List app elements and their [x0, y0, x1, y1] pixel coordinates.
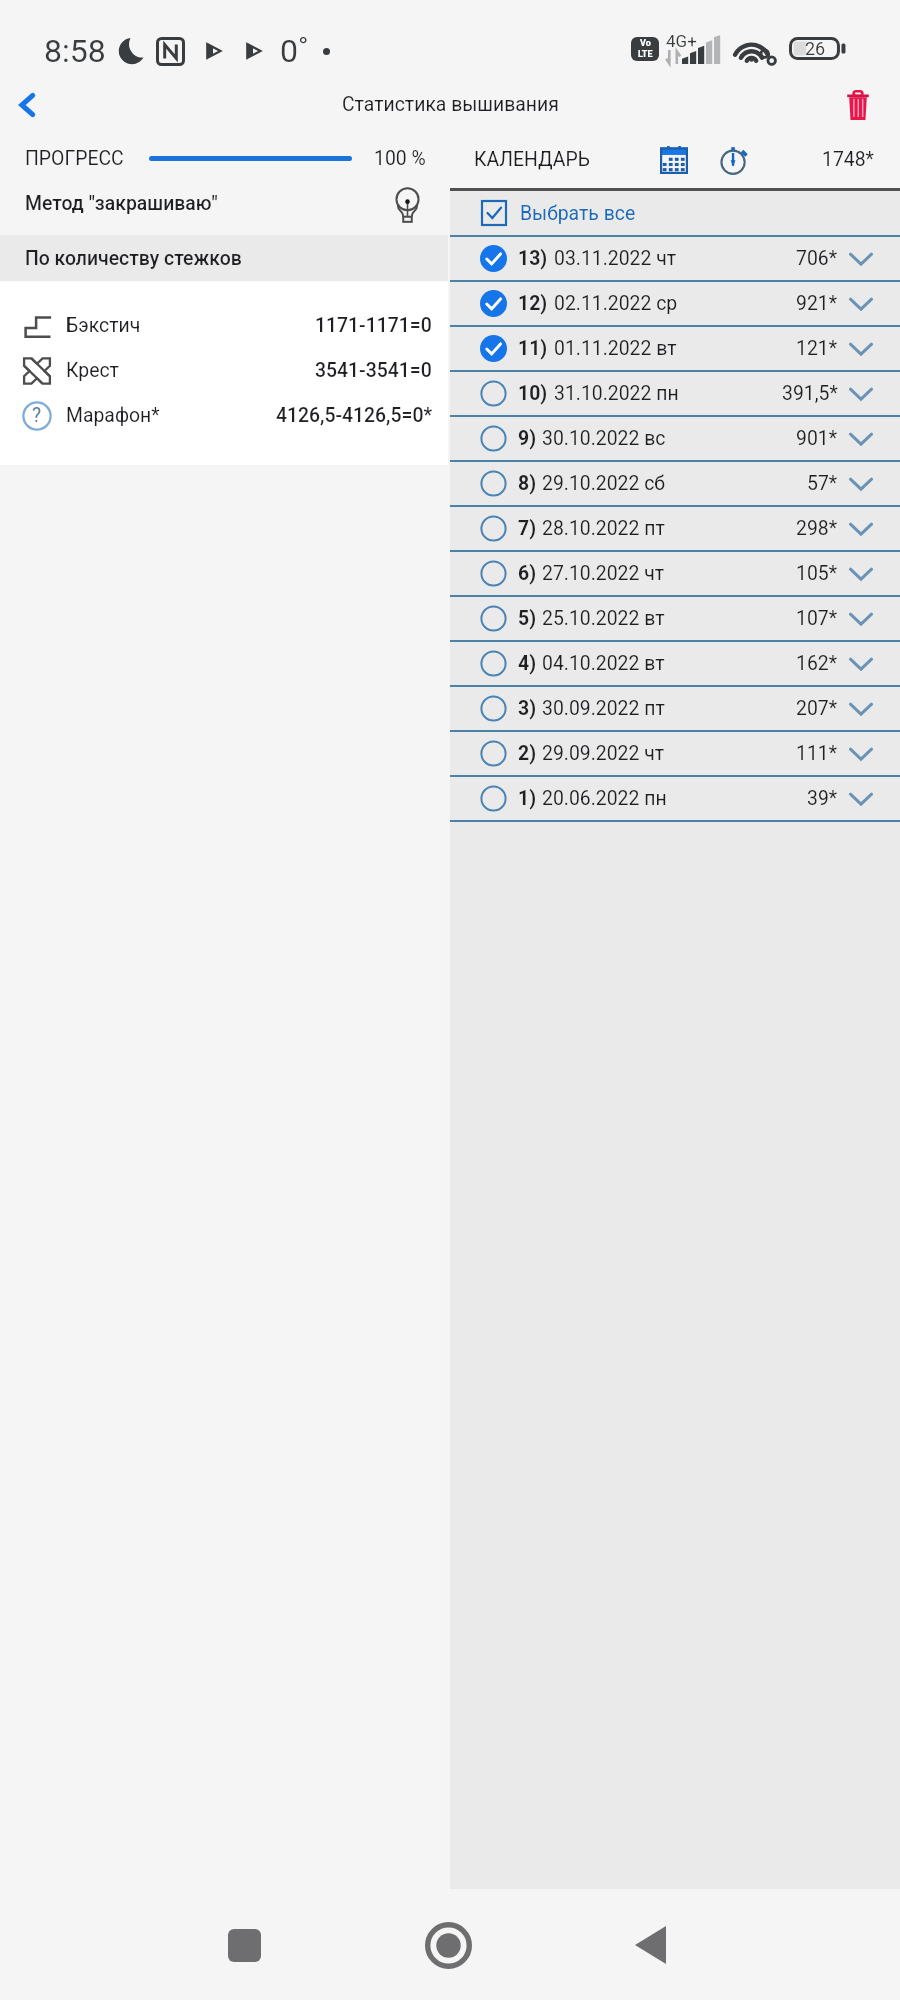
staticText: 105*	[796, 562, 838, 585]
button[interactable]: Timer	[713, 139, 755, 181]
staticText: 8)	[518, 472, 536, 495]
button[interactable]: 5)	[450, 597, 900, 640]
staticText: 29.09.2022 чт	[542, 742, 665, 765]
button[interactable]: Delete	[833, 80, 883, 130]
button[interactable]: 1)	[450, 777, 900, 820]
staticText: 20.06.2022 пн	[542, 787, 667, 810]
staticText: 26	[805, 38, 826, 59]
staticText: 8:58	[44, 32, 106, 70]
staticText: 5)	[518, 607, 536, 630]
staticText: 298*	[796, 517, 838, 540]
staticText: 01.11.2022 вт	[554, 337, 677, 360]
staticText: 1748*	[822, 148, 874, 171]
staticText: 13)	[518, 247, 548, 270]
button[interactable]: Home	[398, 1895, 498, 1995]
staticText: 4G+	[666, 31, 697, 51]
staticText: 4126,5-4126,5=0*	[276, 404, 432, 427]
button[interactable]: 12)	[450, 282, 900, 325]
button[interactable]: 4)	[450, 642, 900, 685]
staticText: 162*	[796, 652, 838, 675]
button[interactable]: Back	[600, 1895, 700, 1995]
staticText: Статистика вышивания	[342, 93, 559, 116]
staticText: Крест	[66, 359, 119, 382]
staticText: 100 %	[374, 147, 426, 170]
staticText: 107*	[796, 607, 838, 630]
staticText: КАЛЕНДАРЬ	[474, 148, 590, 171]
staticText: 7)	[518, 517, 536, 540]
staticText: 2)	[518, 742, 536, 765]
staticText: 30.09.2022 пт	[542, 697, 665, 720]
staticText: 901*	[796, 427, 838, 450]
button[interactable]: 11)	[450, 327, 900, 370]
button[interactable]: 6)	[450, 552, 900, 595]
staticText: Выбрать все	[520, 202, 636, 225]
button[interactable]: Крест	[0, 348, 448, 393]
staticText: 30.10.2022 вс	[542, 427, 666, 450]
button[interactable]: ?	[0, 393, 448, 438]
button[interactable]: 13)	[450, 237, 900, 280]
staticText: 29.10.2022 сб	[542, 472, 666, 495]
staticText: 121*	[796, 337, 838, 360]
button[interactable]: 2)	[450, 732, 900, 775]
button[interactable]: Выбрать все	[450, 191, 900, 235]
staticText: 6)	[518, 562, 536, 585]
staticText: 1171-1171=0	[315, 314, 432, 337]
button[interactable]: 10)	[450, 372, 900, 415]
button[interactable]: 8)	[450, 462, 900, 505]
staticText: 921*	[796, 292, 838, 315]
staticText: Бэкстич	[66, 314, 141, 337]
button[interactable]: Бэкстич	[0, 303, 448, 348]
staticText: 02.11.2022 ср	[554, 292, 678, 315]
staticText: 111*	[796, 742, 838, 765]
button[interactable]: Hint	[384, 188, 430, 234]
staticText: ПРОГРЕСС	[25, 147, 124, 170]
staticText: 706*	[796, 247, 838, 270]
staticText: LTE	[638, 49, 653, 60]
staticText: По количеству стежков	[25, 247, 242, 270]
staticText: 12)	[518, 292, 548, 315]
staticText: 28.10.2022 пт	[542, 517, 665, 540]
staticText: 3)	[518, 697, 536, 720]
staticText: 04.10.2022 вт	[542, 652, 665, 675]
staticText: 391,5*	[782, 382, 838, 405]
staticText: 57*	[807, 472, 838, 495]
staticText: 0˚	[280, 32, 309, 70]
button[interactable]: 7)	[450, 507, 900, 550]
staticText: 10)	[518, 382, 548, 405]
staticText: 11)	[518, 337, 548, 360]
staticText: Vo	[640, 38, 651, 49]
button[interactable]: 9)	[450, 417, 900, 460]
staticText: 03.11.2022 чт	[554, 247, 677, 270]
staticText: 25.10.2022 вт	[542, 607, 665, 630]
staticText: 1)	[518, 787, 536, 810]
button[interactable]: 3)	[450, 687, 900, 730]
button[interactable]: Recents	[194, 1895, 294, 1995]
staticText: 207*	[796, 697, 838, 720]
staticText: ?	[32, 404, 42, 427]
staticText: Марафон*	[66, 404, 160, 427]
staticText: 9)	[518, 427, 536, 450]
staticText: 3541-3541=0	[315, 359, 432, 382]
staticText: 4)	[518, 652, 536, 675]
staticText: 39*	[807, 787, 838, 810]
staticText: Метод "закрашиваю"	[25, 192, 218, 215]
staticText: 27.10.2022 чт	[542, 562, 665, 585]
staticText: 31.10.2022 пн	[554, 382, 679, 405]
button[interactable]: Calendar	[653, 139, 695, 181]
button[interactable]: Back	[2, 80, 52, 130]
